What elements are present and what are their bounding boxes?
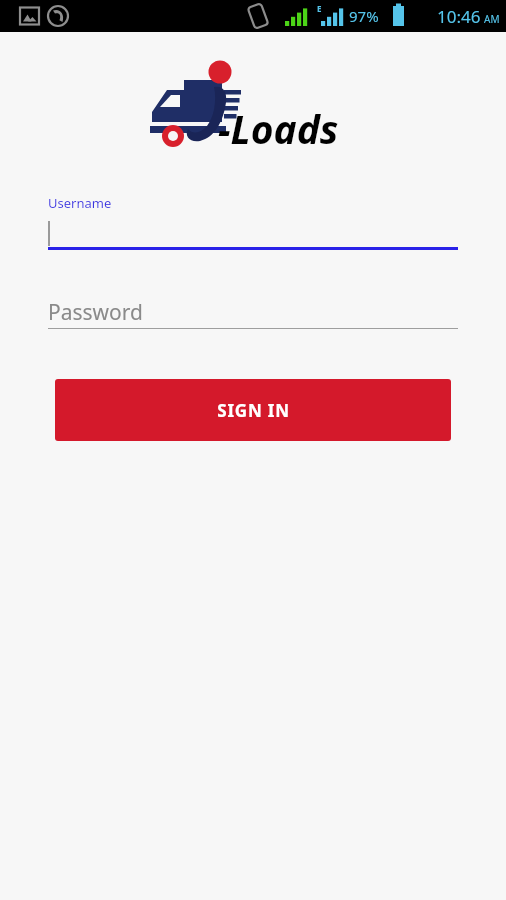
staticText: Password [48,298,143,327]
button[interactable]: Username [48,194,458,250]
other: i-Loads logo [138,50,258,156]
staticText: SIGN IN [217,399,290,422]
button[interactable]: Password [48,296,458,329]
staticText: E [317,3,322,14]
staticText: -Loads [218,102,339,155]
button[interactable]: SIGN IN [55,379,451,441]
staticText: AM [484,12,500,26]
staticText: 10:46 [437,5,481,28]
staticText: Username [48,194,112,212]
staticText: 97% [349,6,379,26]
